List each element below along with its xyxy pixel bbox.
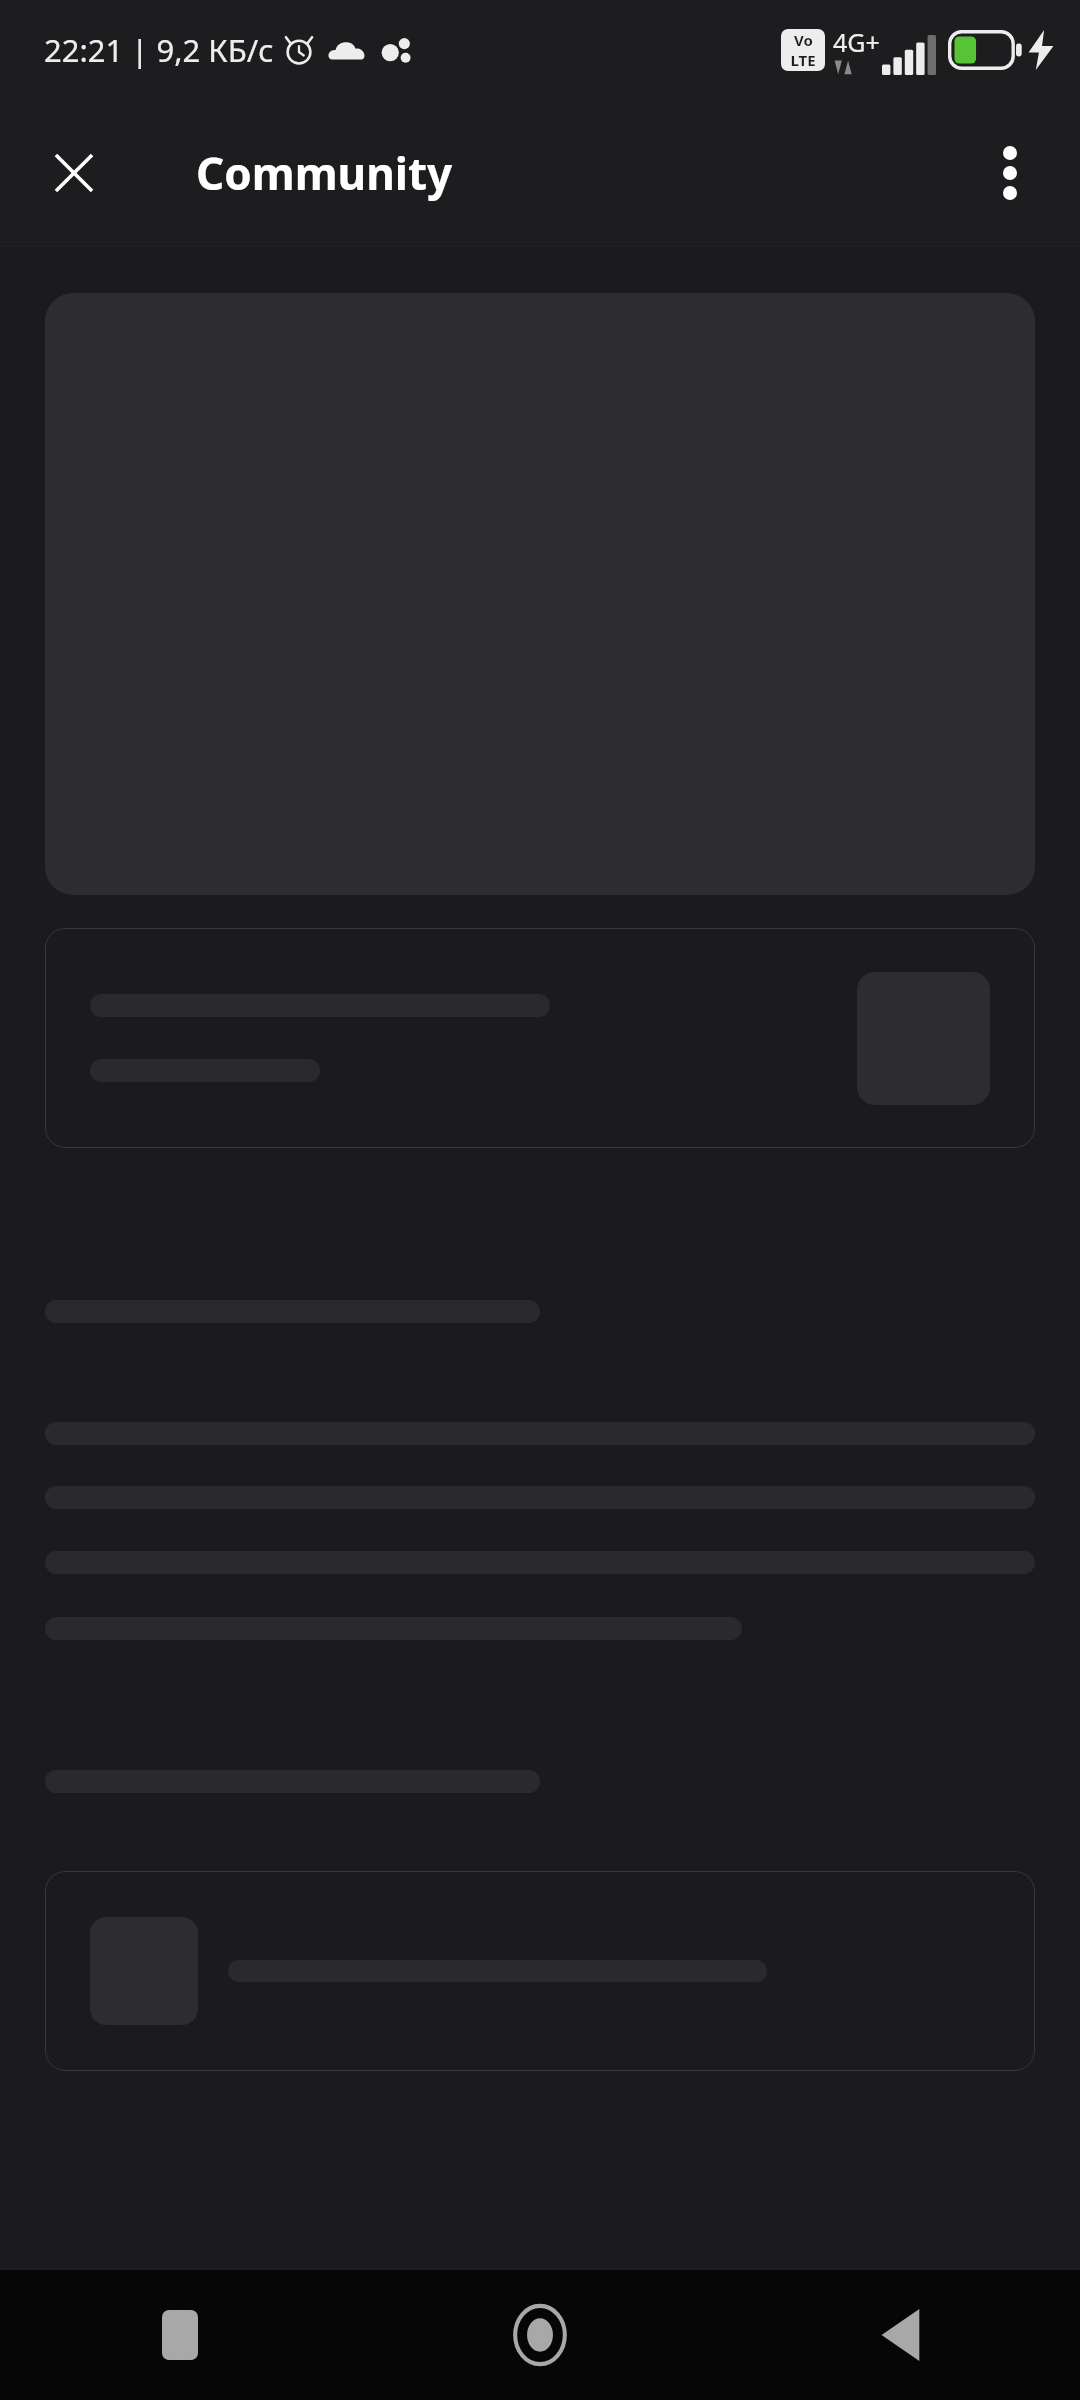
button[interactable]: Close [26,125,122,221]
button[interactable] [45,928,1035,1148]
staticText: 4G+ [833,25,880,59]
button[interactable]: Recent apps [0,2270,360,2400]
button[interactable]: Back [720,2270,1080,2400]
button[interactable] [45,1871,1035,2071]
staticText: 22:21 | 9,2 КБ/с [44,29,274,71]
staticText: Vo [794,30,813,50]
button[interactable]: Home [360,2270,720,2400]
staticText: LTE [790,50,816,70]
button[interactable]: More options [962,125,1058,221]
staticText: Community [196,143,453,203]
